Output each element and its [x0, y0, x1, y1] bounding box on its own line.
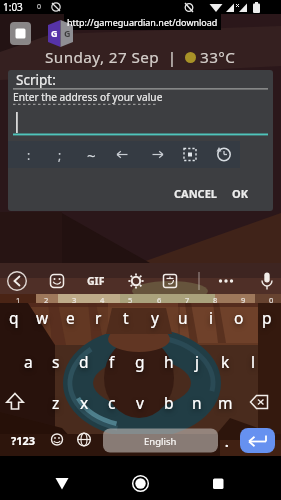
button[interactable]: y — [141, 302, 169, 332]
button[interactable] — [157, 268, 183, 294]
button[interactable]: q — [0, 302, 28, 332]
staticText: Enter the address of your value — [13, 90, 163, 104]
staticText: GIF — [87, 274, 105, 288]
staticText: . — [225, 433, 229, 451]
button[interactable]: k — [211, 346, 239, 376]
staticText: p — [262, 307, 272, 328]
button[interactable] — [120, 462, 160, 496]
staticText: Script: — [16, 71, 56, 88]
staticText: G — [51, 27, 58, 39]
button[interactable]: CANCEL — [172, 183, 219, 203]
button[interactable]: u — [169, 302, 197, 332]
staticText: f — [109, 351, 115, 372]
button[interactable]: ~ — [79, 141, 103, 168]
staticText: 8 — [213, 295, 218, 305]
staticText: a — [24, 351, 33, 372]
staticText: e — [66, 307, 75, 328]
button[interactable] — [212, 141, 236, 168]
button[interactable]: . — [220, 432, 234, 452]
button[interactable] — [123, 268, 149, 294]
staticText: b — [164, 392, 174, 413]
button[interactable] — [144, 141, 172, 168]
staticText: : — [27, 147, 31, 163]
staticText: ~ — [87, 145, 96, 165]
button[interactable] — [108, 141, 136, 168]
staticText: j — [195, 351, 199, 372]
button[interactable] — [46, 428, 68, 452]
staticText: d — [79, 351, 89, 372]
staticText: 33°C — [200, 47, 236, 68]
button[interactable]: v — [126, 387, 154, 417]
button[interactable]: ; — [50, 141, 70, 168]
button[interactable]: : — [19, 141, 39, 168]
button[interactable]: n — [183, 387, 211, 417]
button[interactable]: English — [103, 429, 217, 453]
staticText: English — [144, 435, 177, 448]
staticText: G — [64, 27, 71, 39]
staticText: 0 — [269, 295, 274, 305]
staticText: 5 — [128, 295, 133, 305]
button[interactable]: r — [84, 302, 112, 332]
button[interactable]: z — [42, 387, 70, 417]
button[interactable] — [254, 268, 280, 294]
staticText: s — [52, 351, 60, 372]
button[interactable] — [246, 388, 276, 416]
button[interactable]: h — [155, 346, 183, 376]
staticText: k — [221, 351, 230, 372]
staticText: q — [9, 307, 19, 328]
button[interactable]: b — [155, 387, 183, 417]
button[interactable]: m — [211, 387, 239, 417]
staticText: OK — [232, 186, 249, 201]
button[interactable]: d — [70, 346, 98, 376]
button[interactable]: ?123 — [6, 430, 40, 450]
staticText: g — [135, 351, 145, 372]
staticText: ?123 — [11, 433, 36, 448]
button[interactable]: s — [42, 346, 70, 376]
button[interactable]: f — [98, 346, 126, 376]
button[interactable]: i — [197, 302, 225, 332]
button[interactable]: j — [183, 346, 211, 376]
button[interactable]: GIF — [83, 268, 109, 294]
staticText: y — [151, 307, 159, 328]
button[interactable] — [4, 268, 30, 294]
button[interactable] — [213, 268, 239, 294]
button[interactable] — [72, 428, 96, 452]
staticText: c — [108, 392, 116, 413]
button[interactable] — [198, 462, 238, 496]
button[interactable] — [42, 462, 82, 496]
staticText: t — [123, 307, 129, 328]
staticText: x — [80, 392, 89, 413]
staticText: 9 — [241, 295, 246, 305]
staticText: l — [251, 351, 255, 372]
staticText: u — [178, 307, 188, 328]
button[interactable] — [2, 388, 30, 416]
button[interactable]: w — [28, 302, 56, 332]
button[interactable]: OK — [227, 183, 253, 203]
button[interactable]: c — [98, 387, 126, 417]
staticText: 3 — [72, 295, 77, 305]
button[interactable]: e — [56, 302, 84, 332]
button[interactable] — [44, 268, 70, 294]
staticText: n — [192, 392, 202, 413]
staticText: i — [209, 307, 213, 328]
staticText: ; — [58, 147, 62, 163]
button[interactable] — [240, 428, 275, 453]
button[interactable]: x — [70, 387, 98, 417]
staticText: 1:03 — [3, 0, 23, 14]
staticText: h — [164, 351, 174, 372]
button[interactable]: a — [14, 346, 42, 376]
button[interactable]: l — [239, 346, 267, 376]
button[interactable] — [178, 141, 202, 168]
button[interactable]: o — [225, 302, 253, 332]
staticText: o — [234, 307, 244, 328]
button[interactable]: http://gameguardian.net/download — [64, 13, 221, 30]
staticText: 7 — [185, 295, 190, 305]
staticText: 6 — [157, 295, 162, 305]
button[interactable]: p — [253, 302, 281, 332]
staticText: CANCEL — [174, 186, 217, 201]
button[interactable]: g — [126, 346, 154, 376]
staticText: z — [52, 392, 60, 413]
staticText: w — [36, 307, 49, 328]
button[interactable]: t — [112, 302, 140, 332]
staticText: 0 — [37, 2, 42, 12]
